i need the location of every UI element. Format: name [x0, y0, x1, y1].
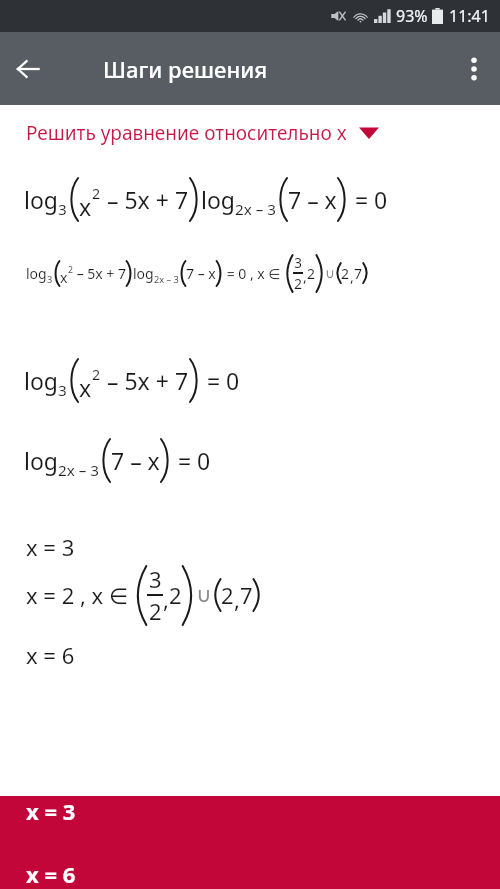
staticText: x = 3	[26, 796, 76, 826]
staticText: x = 3	[26, 532, 75, 562]
staticText: 7	[354, 264, 363, 283]
staticText: = 0	[172, 445, 211, 476]
staticText: 3	[58, 199, 67, 220]
staticText: 2	[68, 264, 73, 276]
staticText: ,	[350, 267, 354, 286]
staticText: x = 6	[26, 859, 76, 889]
staticText: x = 2 , x ∈	[26, 580, 134, 610]
staticText: = 0	[349, 184, 388, 215]
staticText: ∪	[196, 583, 212, 607]
staticText: 2	[92, 184, 101, 203]
staticText: = 0	[201, 365, 240, 396]
staticText: 2	[169, 580, 182, 610]
staticText: 2x – 3	[154, 273, 179, 286]
staticText: ,	[163, 584, 169, 614]
staticText: 3	[149, 564, 162, 594]
staticText: = 0 , x ∈	[223, 264, 285, 283]
staticText: 2	[307, 264, 316, 283]
staticText: log	[201, 184, 235, 215]
staticText: 93%	[396, 5, 428, 27]
staticText: 3	[58, 380, 67, 401]
staticText: – 5x + 7	[101, 184, 189, 215]
staticText: log	[133, 264, 154, 283]
staticText: 3	[47, 273, 53, 286]
staticText: 2	[92, 365, 101, 384]
button[interactable]: Back	[0, 41, 56, 97]
staticText: – 5x + 7	[73, 264, 126, 283]
button[interactable]: Решить уравнение относительно x	[0, 105, 500, 160]
staticText: x	[79, 372, 92, 403]
staticText: ,	[303, 267, 307, 286]
staticText: Шаги решения	[103, 54, 268, 84]
staticText: x	[79, 191, 92, 222]
staticText: ,	[234, 584, 240, 614]
staticText: 2	[294, 274, 303, 293]
staticText: 7 – x	[111, 445, 160, 476]
staticText: log	[24, 445, 58, 476]
staticText: x = 6	[26, 640, 75, 670]
staticText: log	[24, 365, 58, 396]
staticText: 2	[221, 580, 234, 610]
staticText: log	[24, 184, 58, 215]
staticText: x	[60, 268, 68, 287]
button[interactable]: x = 3	[0, 796, 500, 889]
staticText: 3	[294, 253, 303, 272]
staticText: 7	[240, 580, 253, 610]
staticText: 7 – x	[186, 264, 216, 283]
staticText: 2x – 3	[235, 199, 276, 220]
staticText: – 5x + 7	[101, 365, 189, 396]
staticText: ∪	[325, 266, 335, 281]
staticText: 7 – x	[288, 184, 337, 215]
staticText: Решить уравнение относительно x	[26, 120, 347, 146]
staticText: 2	[149, 596, 162, 626]
staticText: 2x – 3	[58, 460, 99, 481]
button[interactable]: More options	[448, 43, 500, 95]
staticText: log	[26, 264, 47, 283]
staticText: 2	[341, 264, 350, 283]
staticText: 11:41	[449, 5, 490, 27]
